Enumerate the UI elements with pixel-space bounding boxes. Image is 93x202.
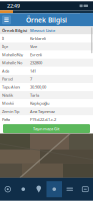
staticText: 232800 <box>30 60 42 65</box>
staticText: Vize <box>30 44 37 49</box>
button[interactable]: Taşınmaza Git <box>3 124 90 133</box>
staticText: 7 <box>30 76 32 82</box>
staticText: F19-d-22-d-1-c-2 <box>30 117 56 122</box>
button[interactable]: Layers <box>77 181 93 197</box>
staticText: Mevkii <box>2 101 14 106</box>
button[interactable]: Pin <box>31 181 46 197</box>
staticText: 22:49 <box>7 2 20 9</box>
button[interactable]: Nearby <box>15 181 31 197</box>
staticText: Ada <box>2 68 9 73</box>
button[interactable]: Locate <box>0 181 15 197</box>
staticText: Zemin Tip <box>2 109 19 114</box>
staticText: Tarla <box>30 92 39 98</box>
staticText: Pafta <box>2 117 10 122</box>
staticText: 30.900,00 <box>30 84 46 90</box>
staticText: Parsel <box>2 76 13 82</box>
staticText: Örnek Bilgisi <box>26 15 67 24</box>
staticText: Ana Taşınmaz <box>30 109 55 114</box>
staticText: Taşınmaza Git <box>33 126 60 131</box>
button[interactable]: List <box>62 181 77 197</box>
staticText: İlçe <box>2 44 8 49</box>
staticText: Evrenli <box>30 52 42 57</box>
staticText: Kırklareli <box>30 36 46 41</box>
staticText: Mevcut Liste <box>30 28 55 33</box>
staticText: Mahalle/Köy <box>2 52 23 57</box>
staticText: Örnek Bilgisi <box>2 28 27 33</box>
staticText: Nitelik <box>2 92 13 98</box>
button[interactable]: Parcel <box>46 181 62 197</box>
staticText: Tapu Alanı <box>2 84 20 90</box>
staticText: Mahalle No <box>2 60 22 65</box>
staticText: 141 <box>30 68 36 73</box>
button[interactable]: Menu <box>0 13 13 26</box>
staticText: İl <box>2 36 4 41</box>
staticText: Kaşıkçıoğlu <box>30 101 49 106</box>
